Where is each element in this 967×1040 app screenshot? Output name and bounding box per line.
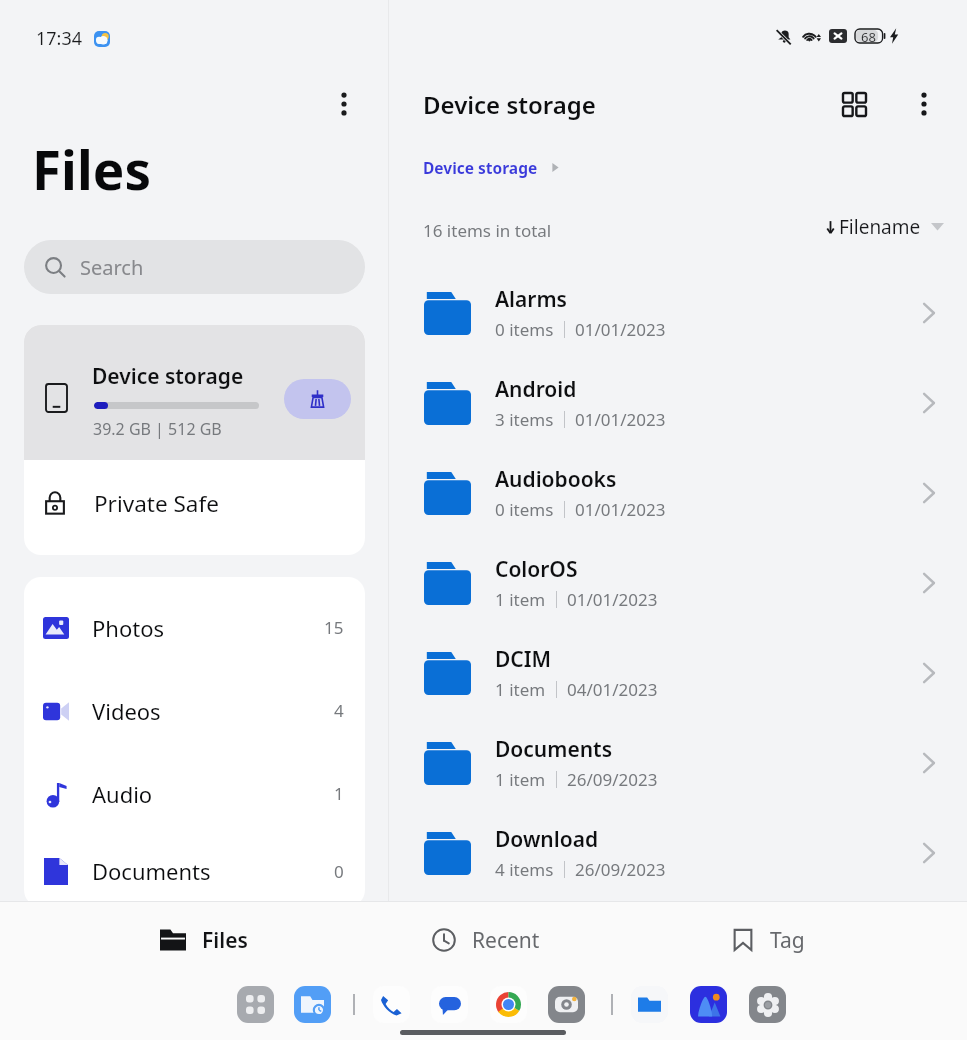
staticText: Android — [495, 375, 577, 404]
staticText: ColorOS — [495, 555, 578, 584]
button[interactable]: Photos — [24, 586, 365, 669]
button[interactable]: Phone — [373, 986, 410, 1023]
staticText: Alarms — [495, 285, 567, 314]
button[interactable]: Messages — [431, 986, 468, 1023]
staticText: Documents — [495, 735, 612, 764]
button[interactable]: Documents — [24, 835, 365, 907]
button[interactable]: Download — [389, 808, 967, 898]
button[interactable]: Alarms — [389, 268, 967, 358]
staticText: 26/09/2023 — [567, 768, 658, 791]
staticText: Private Safe — [94, 488, 219, 519]
button[interactable]: Tag — [625, 902, 907, 974]
button[interactable]: More options — [902, 82, 946, 126]
staticText: 01/01/2023 — [575, 498, 666, 521]
staticText: 1 item — [495, 588, 546, 611]
button[interactable]: Grid view — [832, 82, 876, 126]
staticText: Search — [80, 254, 144, 281]
staticText: Device storage — [92, 362, 244, 391]
staticText: 1 item — [495, 768, 546, 791]
staticText: 1 — [334, 782, 344, 805]
staticText: 01/01/2023 — [567, 588, 658, 611]
staticText: 01/01/2023 — [575, 408, 666, 431]
button[interactable]: Filename — [826, 212, 944, 242]
button[interactable]: ColorOS — [389, 538, 967, 628]
staticText: 17:34 — [36, 26, 83, 51]
button[interactable]: Documents — [389, 718, 967, 808]
button[interactable]: Android — [389, 358, 967, 448]
button[interactable]: App drawer — [237, 986, 274, 1023]
staticText: Device storage — [423, 88, 596, 121]
button[interactable]: Clean up storage — [284, 379, 351, 419]
button[interactable]: Private Safe — [24, 460, 365, 555]
staticText: Files — [32, 133, 151, 205]
staticText: Photos — [92, 613, 165, 643]
button[interactable]: Gallery — [690, 986, 727, 1023]
staticText: Device storage — [423, 157, 538, 178]
staticText: Tag — [770, 926, 805, 955]
staticText: 0 items — [495, 318, 554, 341]
staticText: Audiobooks — [495, 465, 617, 494]
staticText: Files — [202, 926, 248, 955]
button[interactable]: Chrome — [490, 986, 527, 1023]
staticText: 4 — [334, 699, 344, 722]
staticText: 3 items — [495, 408, 554, 431]
staticText: 0 — [334, 860, 344, 883]
button[interactable]: Device storage — [423, 157, 560, 178]
staticText: Audio — [92, 779, 153, 809]
staticText: 15 — [324, 616, 344, 639]
button[interactable]: Settings — [749, 986, 786, 1023]
staticText: 68 — [861, 28, 876, 46]
staticText: Filename — [839, 214, 921, 240]
button[interactable]: My Files — [631, 986, 668, 1023]
button[interactable]: DCIM — [389, 628, 967, 718]
staticText: 0 items — [495, 498, 554, 521]
staticText: Videos — [92, 696, 161, 726]
staticText: 04/01/2023 — [567, 678, 658, 701]
button[interactable]: More options — [322, 82, 366, 126]
button[interactable]: Files — [61, 902, 343, 974]
staticText: 16 items in total — [423, 219, 552, 242]
staticText: Documents — [92, 856, 211, 886]
staticText: Recent — [472, 926, 540, 955]
staticText: 26/09/2023 — [575, 858, 666, 881]
staticText: 01/01/2023 — [575, 318, 666, 341]
staticText: 1 item — [495, 678, 546, 701]
button[interactable]: Camera — [548, 986, 585, 1023]
button[interactable]: Device storage — [24, 325, 365, 460]
button[interactable]: Recent — [343, 902, 625, 974]
staticText: Download — [495, 825, 599, 854]
button[interactable]: Videos — [24, 669, 365, 752]
staticText: DCIM — [495, 645, 552, 674]
staticText: 4 items — [495, 858, 554, 881]
button[interactable]: Recent files — [294, 986, 331, 1023]
button[interactable]: Audio — [24, 752, 365, 835]
staticText: 39.2 GB | 512 GB — [93, 418, 222, 440]
button[interactable]: Search — [24, 240, 365, 294]
button[interactable]: Audiobooks — [389, 448, 967, 538]
